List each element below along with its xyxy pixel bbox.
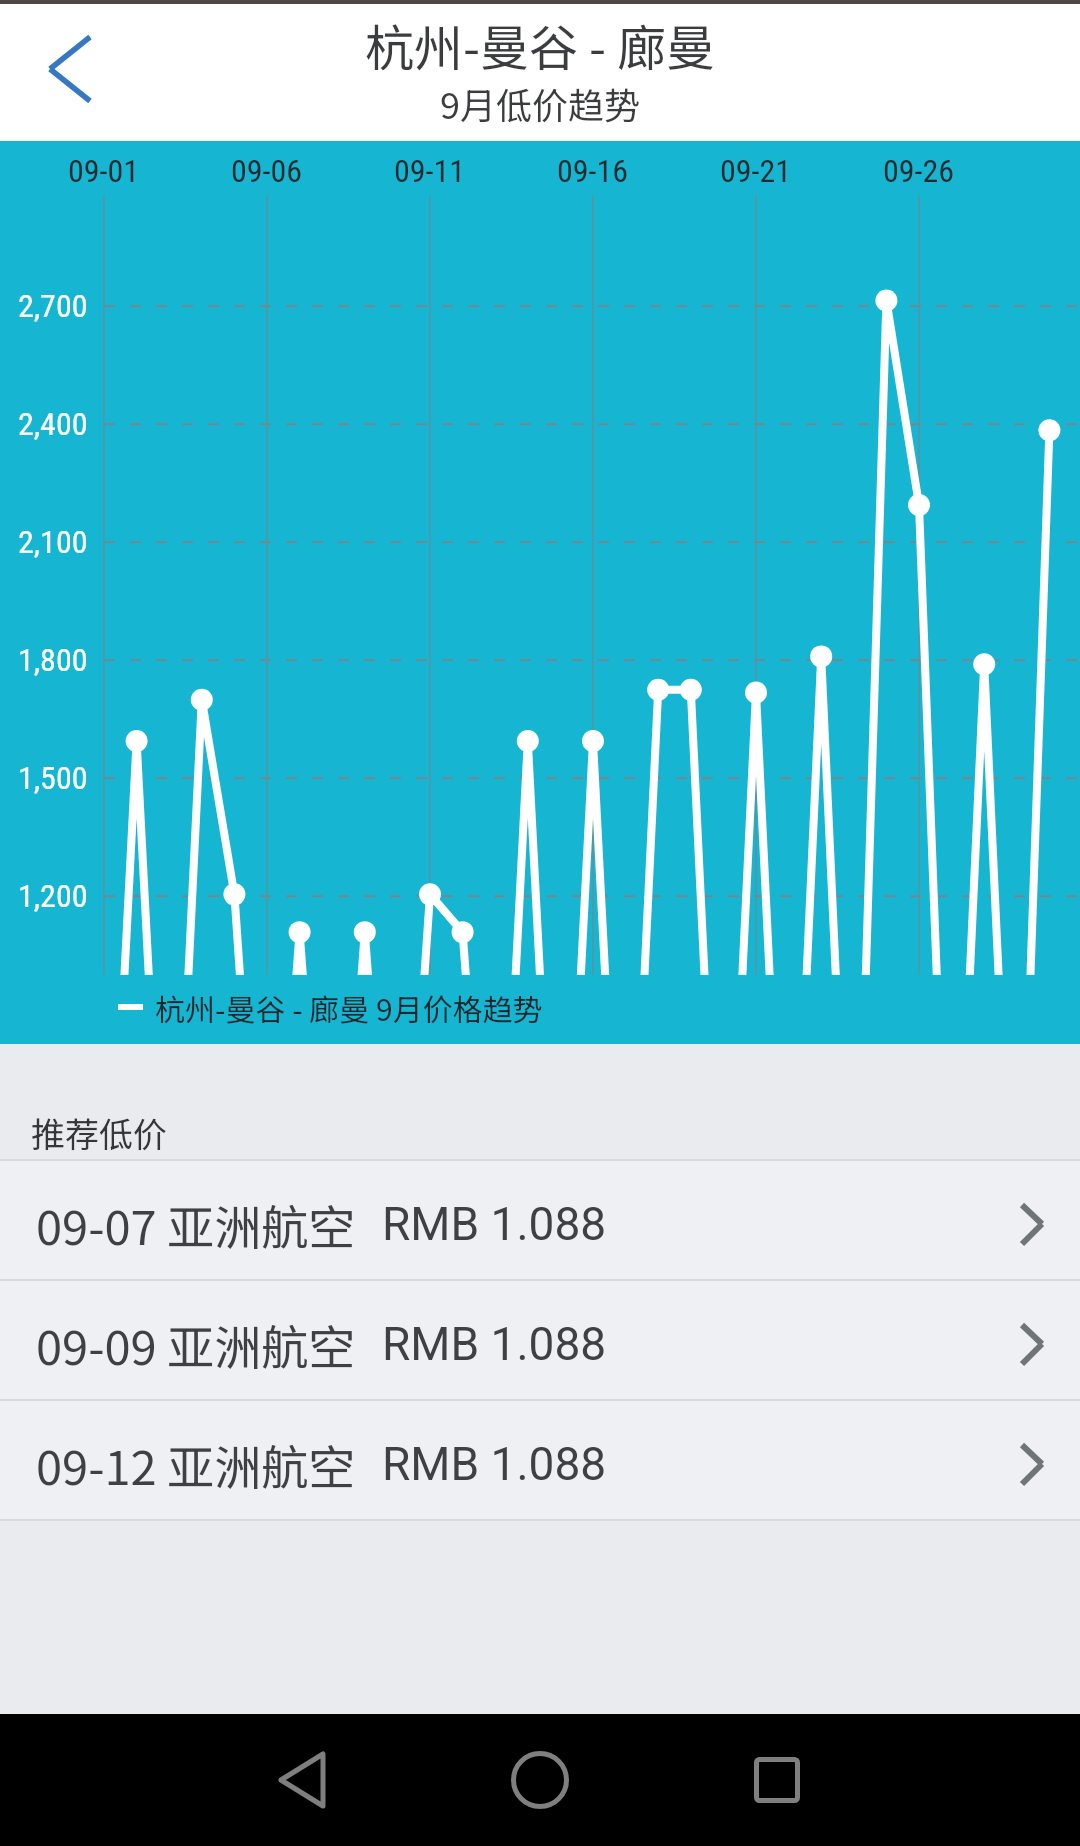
staticText: RMB 1.088: [382, 1197, 607, 1251]
button[interactable]: 09-07 亚洲航空: [0, 1161, 1080, 1279]
staticText: 09-21: [720, 152, 792, 190]
staticText: 09-26: [883, 152, 955, 190]
staticText: 09-16: [557, 152, 629, 190]
staticText: 1,500: [18, 759, 88, 797]
staticText: 09-06: [231, 152, 303, 190]
staticText: 推荐低价: [31, 1108, 167, 1152]
button[interactable]: 09-09 亚洲航空: [0, 1281, 1080, 1399]
staticText: 杭州-曼谷 - 廊曼: [365, 9, 715, 75]
button[interactable]: [20, 14, 120, 124]
button[interactable]: [725, 1714, 829, 1846]
button[interactable]: [250, 1714, 354, 1846]
staticText: 2,400: [18, 405, 88, 443]
staticText: 09-12 亚洲航空: [36, 1430, 356, 1498]
button[interactable]: [488, 1714, 592, 1846]
staticText: 2,700: [18, 287, 88, 325]
staticText: RMB 1.088: [382, 1437, 607, 1491]
staticText: 9月低价趋势: [440, 77, 640, 127]
staticText: 1,800: [18, 641, 88, 679]
staticText: RMB 1.088: [382, 1317, 607, 1371]
staticText: 1,200: [18, 877, 88, 915]
staticText: 2,100: [18, 523, 88, 561]
staticText: 09-01: [68, 152, 140, 190]
button[interactable]: 09-12 亚洲航空: [0, 1401, 1080, 1519]
staticText: 09-07 亚洲航空: [36, 1190, 356, 1258]
staticText: 09-11: [394, 152, 466, 190]
staticText: 杭州-曼谷 - 廊曼 9月价格趋势: [155, 986, 543, 1028]
staticText: 09-09 亚洲航空: [36, 1310, 356, 1378]
